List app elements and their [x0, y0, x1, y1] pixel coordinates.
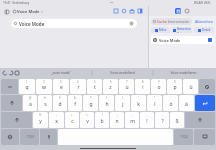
- button[interactable]: Aktualisieren: [129, 21, 134, 26]
- button[interactable]: Bewertung: [172, 27, 192, 33]
- button[interactable]: *: [83, 95, 98, 111]
- button[interactable]: Globus: [1, 129, 19, 145]
- button[interactable]: ': [131, 95, 146, 111]
- button[interactable]: „voice mode": [30, 68, 92, 78]
- staticText: ): [122, 96, 123, 100]
- staticText: 3: [60, 80, 62, 84]
- staticText: *: [90, 96, 92, 100]
- staticText: ?: [161, 118, 164, 125]
- button[interactable]: 7: [119, 79, 134, 94]
- staticText: 4: [77, 80, 79, 84]
- staticText: p: [173, 84, 177, 91]
- button[interactable]: (: [99, 95, 114, 111]
- button[interactable]: +: [65, 112, 79, 128]
- staticText: x: [55, 118, 58, 125]
- staticText: Mitte: [159, 28, 167, 32]
- staticText: (: [106, 96, 107, 100]
- staticText: .?123: [26, 135, 34, 139]
- button[interactable]: .?123: [20, 129, 39, 145]
- button[interactable]: ß: [170, 112, 184, 128]
- button[interactable]: &: [68, 95, 82, 111]
- button[interactable]: Mitte: [151, 27, 170, 33]
- button[interactable]: €: [53, 95, 67, 111]
- button[interactable]: Umschalten: [185, 112, 215, 128]
- button[interactable]: Suche: [151, 18, 192, 25]
- button[interactable]: Info: [184, 8, 190, 14]
- button[interactable]: Teilen: [112, 7, 120, 15]
- button[interactable]: ;: [110, 112, 124, 128]
- button[interactable]: 1: [19, 79, 35, 94]
- button[interactable]: 4: [70, 79, 86, 94]
- staticText: m: [130, 118, 135, 125]
- button[interactable]: Voice Mode: [11, 19, 137, 28]
- button[interactable]: %: [33, 112, 48, 128]
- button[interactable]: Abbrechen: [194, 18, 214, 25]
- staticText: ": [154, 96, 156, 100]
- staticText: ß: [175, 118, 179, 125]
- button[interactable]: Tabs: [136, 7, 144, 15]
- button[interactable]: 9: [151, 79, 166, 94]
- staticText: .?123: [180, 135, 188, 139]
- button[interactable]: =: [80, 112, 94, 128]
- button[interactable]: Umschalten: [1, 95, 22, 111]
- staticText: Voice Mode: [159, 38, 181, 43]
- button[interactable]: ä: [179, 95, 194, 111]
- button[interactable]: Öffnen: [208, 38, 212, 42]
- button[interactable]: Umschalten: [1, 112, 32, 128]
- button[interactable]: 8: [135, 79, 150, 94]
- staticText: e: [60, 84, 63, 91]
- staticText: g: [89, 101, 93, 108]
- staticText: c: [71, 118, 74, 125]
- staticText: 1: [26, 80, 28, 84]
- button[interactable]: :: [125, 112, 139, 128]
- button[interactable]: 5: [87, 79, 102, 94]
- button[interactable]: Lesezeichen: [175, 8, 181, 14]
- button[interactable]: Neu laden: [120, 7, 128, 15]
- staticText: Voice-modelieren: [170, 71, 197, 75]
- button[interactable]: .?123: [174, 129, 193, 145]
- button[interactable]: #: [38, 95, 52, 111]
- staticText: 19:41 Verbindung: [3, 1, 30, 5]
- staticText: t: [94, 84, 96, 91]
- button[interactable]: Löschen: [199, 79, 215, 94]
- button[interactable]: Voice-modellerd: [92, 68, 153, 78]
- button[interactable]: @: [23, 95, 37, 111]
- button[interactable]: Voice Mode: [151, 36, 214, 44]
- button[interactable]: /: [95, 112, 109, 128]
- staticText: !: [146, 118, 148, 125]
- button[interactable]: Voice-modelieren: [153, 68, 214, 78]
- staticText: 9: [158, 80, 160, 84]
- button[interactable]: Wiederholen: [8, 70, 14, 76]
- staticText: 6: [110, 80, 112, 84]
- button[interactable]: Detail: [194, 27, 214, 33]
- button[interactable]: Seitenleiste: [3, 8, 10, 15]
- button[interactable]: Eingabe: [195, 95, 215, 111]
- button[interactable]: 3: [53, 79, 69, 94]
- button[interactable]: ": [147, 95, 162, 111]
- button[interactable]: Datenschutz: [128, 7, 136, 15]
- staticText: 2: [43, 80, 45, 84]
- button[interactable]: ,: [140, 112, 154, 128]
- staticText: WLAN 86%: [194, 1, 211, 5]
- button[interactable]: ü: [183, 79, 198, 94]
- staticText: 5: [94, 80, 96, 84]
- button[interactable]: Voice Mode: [12, 8, 45, 15]
- button[interactable]: ): [115, 95, 130, 111]
- button[interactable]: Tastatur ausblenden: [194, 129, 215, 145]
- button[interactable]: ö: [163, 95, 178, 111]
- button[interactable]: Tab: [1, 79, 18, 94]
- button[interactable]: 0: [167, 79, 182, 94]
- button[interactable]: .: [155, 112, 169, 128]
- staticText: w: [42, 84, 46, 91]
- button[interactable]: 6: [103, 79, 118, 94]
- button[interactable]: 2: [36, 79, 52, 94]
- button[interactable]: Diktieren: [40, 129, 57, 145]
- staticText: ×: [41, 9, 44, 14]
- staticText: y: [39, 118, 42, 125]
- button[interactable]: Widerrufen: [2, 70, 8, 76]
- staticText: i: [142, 84, 144, 91]
- staticText: Detail: [202, 28, 211, 32]
- button[interactable]: Einfügen: [14, 70, 20, 76]
- button[interactable]: -: [49, 112, 64, 128]
